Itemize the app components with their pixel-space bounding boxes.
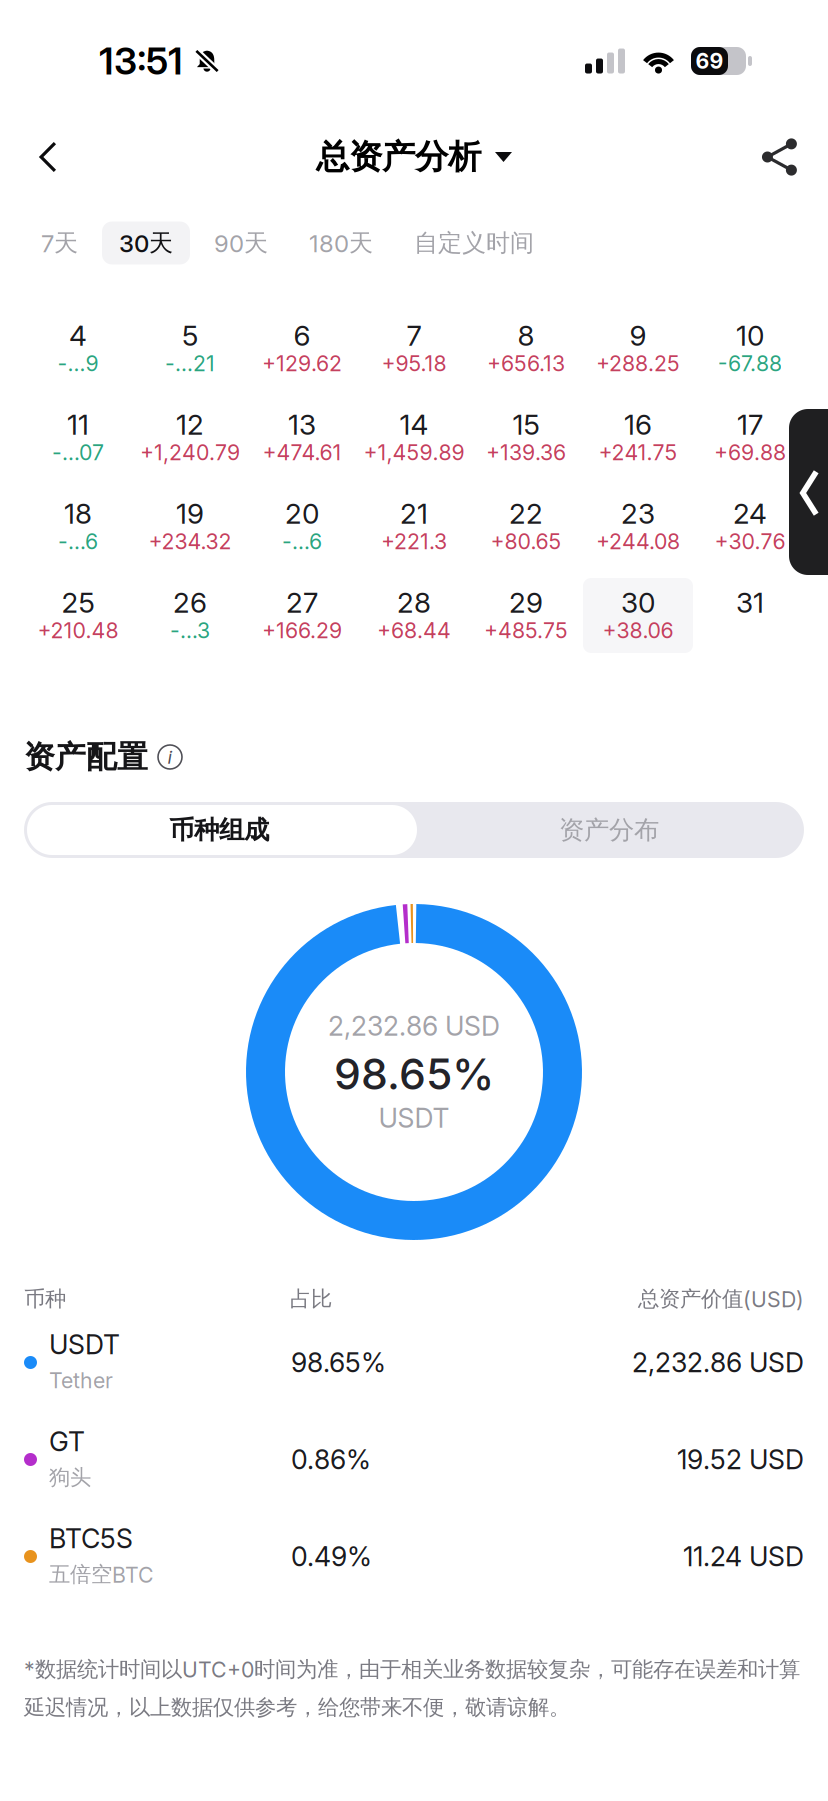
staticText: 19 [176,497,204,530]
staticText: +234.32 [148,529,231,554]
staticText: 69 [695,48,723,74]
staticText: +139.36 [486,440,566,465]
staticText: 14 [399,408,428,441]
staticText: 20 [285,497,319,530]
staticText: 10 [736,319,764,352]
staticText: +288.25 [596,351,680,376]
staticText: +30.76 [714,529,785,554]
staticText: +656.13 [487,351,565,376]
button[interactable]: 90天 [197,221,285,264]
button[interactable]: 资产分布 [414,802,804,858]
staticText: 21 [400,497,428,530]
staticText: 26 [173,586,207,619]
staticText: 30 [621,586,655,619]
staticText: 0.86% [291,1443,371,1476]
staticText: +474.61 [262,440,341,465]
staticText: 22 [509,497,543,530]
staticText: -…6 [58,529,98,554]
staticText: 5 [182,319,198,352]
staticText: 资产配置 [24,738,148,776]
staticText: USDT [378,1102,449,1134]
staticText: 25 [61,586,94,619]
staticText: +68.44 [377,618,451,643]
staticText: -…6 [282,529,322,554]
staticText: +241.75 [598,440,677,465]
staticText: 31 [736,586,764,619]
staticText: 90天 [214,228,268,258]
staticText: *数据统计时间以UTC+0时间为准，由于相关业务数据较复杂，可能存在误差和计算延… [24,1656,800,1721]
staticText: +129.62 [262,351,342,376]
staticText: +95.18 [381,351,446,376]
staticText: BTC5S [49,1522,133,1555]
staticText: +244.08 [596,529,680,554]
button[interactable]: Open side panel [789,409,828,575]
staticText: 24 [733,497,767,530]
staticText: 13 [288,408,316,441]
staticText: 29 [509,586,543,619]
staticText: 27 [286,586,318,619]
staticText: 17 [737,408,763,441]
staticText: -…9 [57,351,98,376]
staticText: 0.49% [291,1540,372,1573]
staticText: 11 [67,408,89,441]
staticText: 23 [621,497,655,530]
staticText: 占比 [290,1286,332,1312]
staticText: 16 [624,408,652,441]
staticText: 8 [517,319,534,352]
button[interactable]: Share [732,113,828,201]
button[interactable]: 7天 [24,221,95,264]
staticText: 6 [293,319,310,352]
staticText: 7 [406,319,421,352]
staticText: +166.29 [262,618,342,643]
staticText: GT [49,1425,85,1458]
staticText: 币种组成 [169,814,269,846]
staticText: 2,232.86 USD [328,1010,500,1042]
staticText: -…3 [170,618,210,643]
staticText: 狗头 [49,1464,91,1491]
staticText: +80.65 [490,529,561,554]
staticText: 2,232.86 USD [632,1346,804,1379]
staticText: +38.06 [602,618,673,643]
staticText: 自定义时间 [414,228,534,258]
staticText: -67.88 [718,351,782,376]
staticText: 13:51 [99,38,183,84]
button[interactable]: 30天 [102,221,190,264]
staticText: -…21 [165,351,215,376]
staticText: i [167,746,172,768]
staticText: +485.75 [484,618,568,643]
staticText: 28 [397,586,431,619]
staticText: 4 [69,319,87,352]
button[interactable]: Back [0,113,96,201]
staticText: 总资产价值(USD) [638,1286,804,1312]
button[interactable]: 币种组成 [24,802,414,858]
staticText: 180天 [309,228,373,258]
staticText: +210.48 [37,618,118,643]
staticText: 15 [512,408,539,441]
staticText: 11.24 USD [683,1540,804,1573]
staticText: 9 [629,319,646,352]
staticText: 30天 [119,228,173,258]
staticText: 18 [64,497,92,530]
staticText: 19.52 USD [677,1443,804,1476]
staticText: 币种 [24,1286,66,1312]
staticText: 12 [176,408,204,441]
button[interactable]: 180天 [292,221,390,264]
button[interactable]: 总资产分析 [316,113,512,201]
staticText: 总资产分析 [316,136,481,178]
staticText: -…07 [52,440,104,465]
staticText: +221.3 [381,529,447,554]
staticText: USDT [49,1328,120,1361]
staticText: 五倍空BTC [49,1561,154,1588]
staticText: +69.88 [714,440,786,465]
staticText: 98.65% [334,1048,494,1100]
staticText: 7天 [41,228,78,258]
button[interactable]: 自定义时间 [397,221,551,264]
staticText: +1,240.79 [140,440,240,465]
staticText: 98.65% [291,1346,386,1379]
staticText: Tether [49,1368,113,1393]
staticText: 资产分布 [559,814,659,846]
staticText: +1,459.89 [363,440,464,465]
